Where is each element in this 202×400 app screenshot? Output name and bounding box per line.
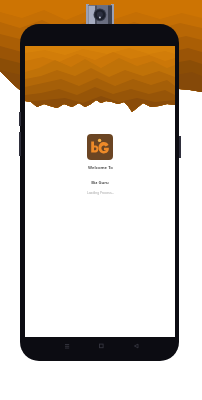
staticText: Welcome To xyxy=(88,165,113,171)
other: Biz Guru logo xyxy=(87,134,113,160)
staticText: Biz Guru xyxy=(91,180,109,186)
staticText: Loading Process... xyxy=(87,191,114,195)
other: Pop-up camera xyxy=(86,4,114,25)
